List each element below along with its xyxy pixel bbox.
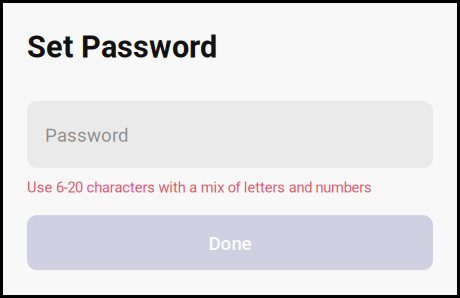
staticText: Done [208,233,251,255]
staticText: Password [45,124,129,146]
staticText: Use 6-20 characters with a mix of letter… [27,179,372,196]
staticText: Set Password [27,29,217,65]
button[interactable]: Done [27,215,433,270]
button[interactable]: Password [27,101,433,168]
